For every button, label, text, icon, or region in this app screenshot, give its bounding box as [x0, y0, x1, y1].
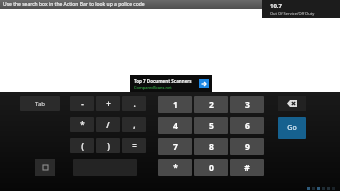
- staticText: ComparedScans.net: [134, 85, 172, 90]
- button[interactable]: *: [158, 159, 192, 176]
- button[interactable]: Top 7 Document Scanners: [130, 75, 212, 92]
- button[interactable]: 2: [194, 96, 228, 113]
- button[interactable]: =: [122, 138, 146, 153]
- staticText: 6: [245, 120, 250, 132]
- staticText: /: [106, 119, 110, 130]
- button[interactable]: ,: [122, 117, 146, 132]
- button[interactable]: .: [122, 96, 146, 111]
- button[interactable]: 1: [158, 96, 192, 113]
- button[interactable]: 9: [230, 138, 264, 155]
- staticText: #: [244, 162, 250, 174]
- staticText: 0: [209, 162, 214, 174]
- staticText: 3: [245, 99, 250, 111]
- button[interactable]: #: [230, 159, 264, 176]
- staticText: 4: [173, 120, 178, 132]
- button[interactable]: 3: [230, 96, 264, 113]
- staticText: Use the search box in the Action Bar to …: [3, 1, 145, 8]
- staticText: -: [81, 98, 84, 109]
- button[interactable]: (: [70, 138, 94, 153]
- staticText: 9: [245, 141, 250, 153]
- staticText: Top 7 Document Scanners: [134, 78, 192, 84]
- staticText: 10.7: [270, 2, 282, 10]
- button[interactable]: Tab: [20, 96, 60, 111]
- button[interactable]: ): [96, 138, 120, 153]
- button[interactable]: Emoji: [35, 159, 55, 176]
- button[interactable]: 8: [194, 138, 228, 155]
- button[interactable]: +: [96, 96, 120, 111]
- staticText: +: [106, 98, 111, 109]
- button[interactable]: 5: [194, 117, 228, 134]
- staticText: Tab: [35, 100, 45, 108]
- button[interactable]: 6: [230, 117, 264, 134]
- button[interactable]: *: [70, 117, 94, 132]
- button[interactable]: 0: [194, 159, 228, 176]
- staticText: Go: [287, 123, 297, 133]
- staticText: 8: [209, 141, 214, 153]
- button[interactable]: 4: [158, 117, 192, 134]
- staticText: *: [173, 162, 178, 174]
- staticText: (: [81, 140, 84, 151]
- button[interactable]: 10.7: [262, 0, 340, 18]
- staticText: =: [132, 140, 137, 151]
- button[interactable]: Backspace: [278, 96, 306, 111]
- staticText: .: [133, 98, 136, 109]
- staticText: 2: [209, 99, 214, 111]
- staticText: ): [107, 140, 110, 151]
- button[interactable]: /: [96, 117, 120, 132]
- button[interactable]: Go: [278, 117, 306, 139]
- staticText: ,: [133, 119, 136, 130]
- button[interactable]: 7: [158, 138, 192, 155]
- staticText: 7: [173, 141, 178, 153]
- button[interactable]: Open ad: [199, 79, 209, 88]
- staticText: *: [80, 119, 85, 130]
- button[interactable]: Use the search box in the Action Bar to …: [0, 0, 340, 9]
- staticText: 1: [173, 99, 178, 111]
- staticText: Out Of Service/Off Duty: [270, 11, 315, 16]
- staticText: 5: [209, 120, 214, 132]
- button[interactable]: -: [70, 96, 94, 111]
